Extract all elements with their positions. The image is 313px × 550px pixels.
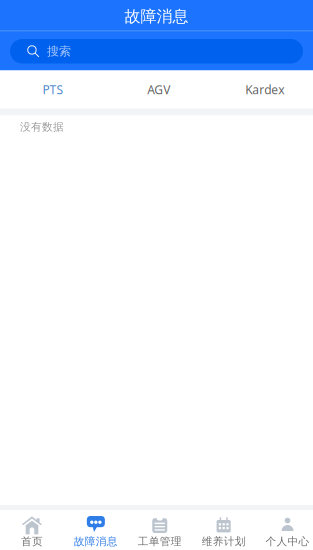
- button[interactable]: 工单管理: [128, 510, 192, 550]
- staticText: 个人中心: [266, 535, 310, 548]
- button[interactable]: Kardex: [212, 70, 313, 108]
- button[interactable]: PTS: [0, 70, 106, 108]
- staticText: PTS: [42, 81, 63, 97]
- button[interactable]: 维养计划: [192, 510, 256, 550]
- staticText: 故障消息: [74, 535, 118, 548]
- button[interactable]: 个人中心: [256, 510, 313, 550]
- button[interactable]: 故障消息: [64, 510, 128, 550]
- staticText: 故障消息: [124, 7, 188, 26]
- staticText: 首页: [21, 535, 43, 548]
- staticText: 搜索: [47, 44, 71, 59]
- staticText: Kardex: [245, 81, 284, 97]
- staticText: AGV: [147, 81, 170, 97]
- button[interactable]: 首页: [0, 510, 64, 550]
- staticText: 维养计划: [202, 535, 246, 548]
- staticText: 没有数据: [20, 120, 64, 134]
- button[interactable]: AGV: [106, 70, 212, 108]
- staticText: 工单管理: [138, 535, 182, 548]
